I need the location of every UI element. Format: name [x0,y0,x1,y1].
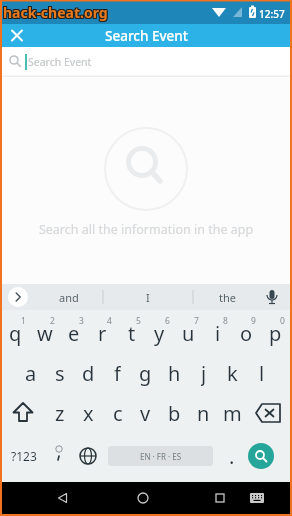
button[interactable]: n [189,400,218,426]
staticText: hack-cheat.org [4,3,109,22]
staticText: d [82,360,95,386]
staticText: Search Event [105,27,188,45]
button[interactable]: c [103,400,132,426]
staticText: hack-cheat.org [4,2,109,21]
button[interactable] [245,482,269,514]
staticText: 8 [223,315,228,327]
staticText: a [25,360,37,386]
staticText: 7 [194,315,199,327]
button[interactable]: i [203,320,232,346]
button[interactable]: g [131,360,160,386]
button[interactable] [125,482,161,514]
button[interactable]: EN · FR · ES [108,446,213,466]
button[interactable]: w [30,320,59,346]
button[interactable]: x [74,400,103,426]
button[interactable]: I [104,284,192,310]
staticText: k [227,360,238,386]
staticText: m [223,400,242,426]
staticText: e [68,320,80,346]
button[interactable] [75,443,101,469]
staticText: 3 [79,315,84,327]
staticText: w [37,320,53,346]
staticText: c [113,400,123,426]
staticText: hack-cheat.org [2,3,107,22]
staticText: I [146,290,150,305]
staticText: n [197,400,210,426]
button[interactable] [250,400,286,426]
button[interactable]: k [218,360,247,386]
button[interactable]: o [232,320,261,346]
staticText: EN · FR · ES [140,451,182,462]
button[interactable]: m [218,400,247,426]
staticText: and [59,290,79,305]
staticText: Search Event [28,55,92,69]
button[interactable]: r [88,320,117,346]
button[interactable]: y [145,320,174,346]
staticText: i [215,320,221,346]
button[interactable]: b [160,400,189,426]
staticText: p [269,320,282,346]
staticText: 1 [21,315,26,327]
staticText: Search all the information in the app [0,221,292,238]
staticText: ?123 [11,448,37,464]
staticText: 4 [107,315,112,327]
button[interactable]: p [261,320,290,346]
button[interactable]: s [45,360,74,386]
staticText: 0 [280,315,285,327]
staticText: hack-cheat.org [3,2,108,21]
button[interactable]: t [117,320,146,346]
staticText: x [83,400,94,426]
staticText: hack-cheat.org [3,3,108,22]
staticText: y [154,320,165,346]
staticText: l [259,360,265,386]
button[interactable]: l [247,360,276,386]
staticText: . [229,443,235,469]
button[interactable]: Search Event [0,47,292,77]
staticText: t [128,320,136,346]
button[interactable] [44,482,80,514]
button[interactable]: a [16,360,45,386]
staticText: g [139,360,152,386]
button[interactable] [248,443,274,469]
button[interactable] [6,400,40,426]
staticText: u [182,320,195,346]
staticText: r [98,320,107,346]
button[interactable]: and [36,284,102,310]
staticText: h [168,360,181,386]
button[interactable]: . [220,443,244,469]
button[interactable]: u [174,320,203,346]
staticText: hack-cheat.org [4,4,109,23]
staticText: 9 [251,315,256,327]
button[interactable]: e [59,320,88,346]
button[interactable]: the [194,284,260,310]
staticText: z [55,400,65,426]
staticText: 12:57 [259,7,285,21]
staticText: s [55,360,65,386]
button[interactable] [46,443,72,469]
button[interactable] [202,482,238,514]
button[interactable]: q [1,320,30,346]
staticText: 5 [136,315,141,327]
staticText: hack-cheat.org [3,4,108,23]
staticText: o [240,320,253,346]
staticText: j [201,360,207,386]
staticText: hack-cheat.org [2,4,107,23]
staticText: q [9,320,22,346]
button[interactable] [8,287,28,307]
button[interactable]: v [131,400,160,426]
button[interactable] [8,24,26,47]
button[interactable]: z [45,400,74,426]
button[interactable]: j [189,360,218,386]
staticText: hack-cheat.org [2,2,107,21]
staticText: v [140,400,151,426]
button[interactable]: ?123 [6,443,42,469]
button[interactable]: d [74,360,103,386]
staticText: the [219,290,236,305]
staticText: b [168,400,181,426]
staticText: f [114,360,121,386]
button[interactable]: f [103,360,132,386]
staticText: 2 [50,315,55,327]
button[interactable]: h [160,360,189,386]
staticText: 6 [165,315,170,327]
